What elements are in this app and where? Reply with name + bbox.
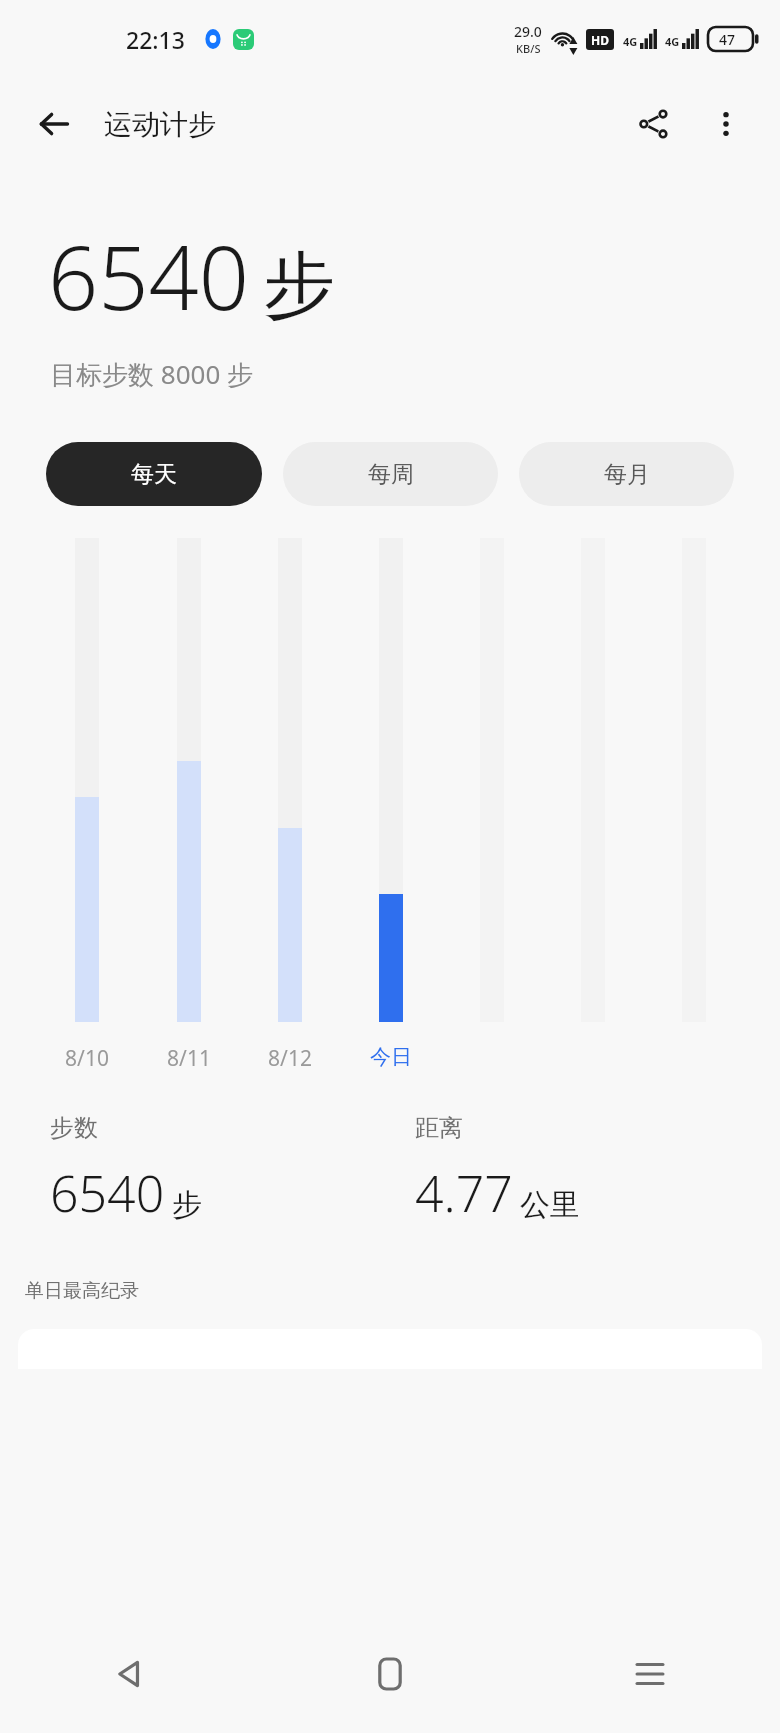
button[interactable]: Share <box>626 96 682 152</box>
staticText: 8/11 <box>167 1044 211 1073</box>
button[interactable]: 每月 <box>519 442 734 506</box>
staticText: 步 <box>172 1186 202 1224</box>
staticText: KB/S <box>516 41 541 56</box>
button[interactable]: Back <box>0 1615 260 1733</box>
staticText: 每月 <box>604 460 650 489</box>
staticText: 8/12 <box>268 1044 312 1073</box>
staticText: 4.77 <box>415 1159 513 1227</box>
staticText: 4G <box>623 34 638 49</box>
staticText: 单日最高纪录 <box>25 1279 139 1303</box>
staticText: 目标步数 8000 步 <box>50 356 254 392</box>
button[interactable]: More options <box>698 96 754 152</box>
button[interactable]: 每天 <box>46 442 262 506</box>
staticText: 今日 <box>370 1044 412 1070</box>
staticText: 8/10 <box>65 1044 109 1073</box>
staticText: 运动计步 <box>104 107 216 142</box>
button[interactable]: 每周 <box>283 442 498 506</box>
staticText: HD <box>591 32 609 48</box>
staticText: 每天 <box>131 460 177 489</box>
button[interactable]: Back <box>26 96 82 152</box>
staticText: 6540 <box>50 1159 165 1227</box>
staticText: 距离 <box>415 1113 463 1143</box>
staticText: 6540 <box>48 216 249 336</box>
button[interactable]: Recents <box>520 1615 780 1733</box>
staticText: 22:13 <box>126 24 185 55</box>
staticText: 步数 <box>50 1113 98 1143</box>
button[interactable]: Home <box>260 1615 520 1733</box>
staticText: 公里 <box>520 1186 580 1224</box>
staticText: 每周 <box>368 460 414 489</box>
staticText: 47 <box>719 30 736 49</box>
staticText: 29.0 <box>514 22 542 41</box>
staticText: 4G <box>665 34 680 49</box>
staticText: 步 <box>263 241 335 332</box>
